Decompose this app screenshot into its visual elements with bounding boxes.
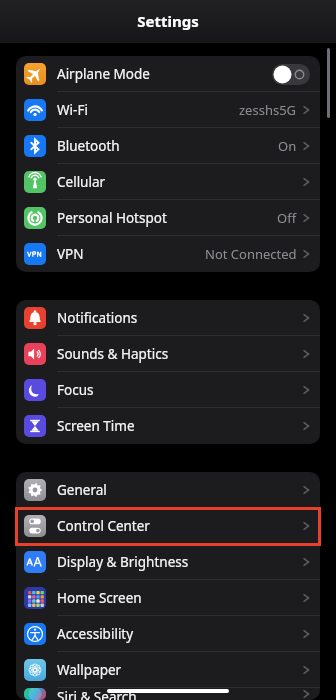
button[interactable]: Screen Time [16, 408, 320, 444]
button[interactable]: Accessibility [16, 616, 320, 652]
button[interactable]: Wi-Fi [16, 92, 320, 128]
staticText: Accessibility [57, 625, 134, 643]
button[interactable]: Cellular [16, 164, 320, 200]
button[interactable]: VPN [16, 236, 320, 272]
button[interactable]: Personal Hotspot [16, 200, 320, 236]
staticText: Settings [137, 11, 199, 31]
staticText: Cellular [57, 173, 106, 191]
staticText: Off [277, 209, 297, 227]
button[interactable]: Notifications [16, 300, 320, 336]
button[interactable]: Focus [16, 372, 320, 408]
staticText: Notifications [57, 309, 138, 327]
button[interactable]: Sounds & Haptics [16, 336, 320, 372]
staticText: zesshs5G [239, 101, 297, 119]
staticText: General [57, 481, 107, 499]
staticText: Siri & Search [57, 688, 137, 700]
staticText: Control Center [57, 517, 150, 535]
button[interactable]: Home Screen [16, 580, 320, 616]
button[interactable]: Bluetooth [16, 128, 320, 164]
button[interactable]: Siri & Search [16, 688, 320, 700]
staticText: Wallpaper [57, 661, 122, 679]
button[interactable]: Control Center [16, 508, 320, 544]
staticText: Focus [57, 381, 94, 399]
staticText: On [278, 137, 297, 155]
button[interactable]: Display & Brightness [16, 544, 320, 580]
staticText: Screen Time [57, 417, 135, 435]
button[interactable]: Airplane Mode [16, 56, 320, 92]
staticText: Sounds & Haptics [57, 345, 169, 363]
staticText: Not Connected [205, 245, 297, 263]
staticText: VPN [57, 245, 84, 263]
staticText: Bluetooth [57, 137, 120, 155]
staticText: Wi-Fi [57, 101, 88, 119]
button[interactable]: General [16, 472, 320, 508]
staticText: Personal Hotspot [57, 209, 167, 227]
staticText: Airplane Mode [57, 65, 150, 83]
staticText: Home Screen [57, 589, 142, 607]
button[interactable]: Wallpaper [16, 652, 320, 688]
staticText: Display & Brightness [57, 553, 189, 571]
